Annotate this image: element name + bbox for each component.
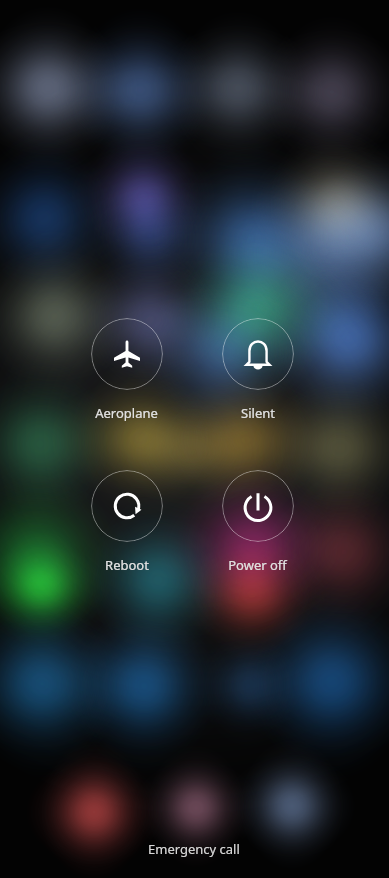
button[interactable]: Aeroplane mode (61, 318, 192, 422)
button[interactable]: Emergency call (130, 832, 258, 866)
staticText: Reboot (105, 556, 149, 574)
button[interactable]: Reboot (61, 470, 192, 574)
staticText: Aeroplane (95, 404, 158, 422)
button[interactable]: Power off (192, 470, 323, 574)
staticText: Emergency call (148, 840, 240, 858)
button[interactable]: Silent mode (192, 318, 323, 422)
staticText: Power off (228, 556, 287, 574)
staticText: Silent (241, 404, 275, 422)
